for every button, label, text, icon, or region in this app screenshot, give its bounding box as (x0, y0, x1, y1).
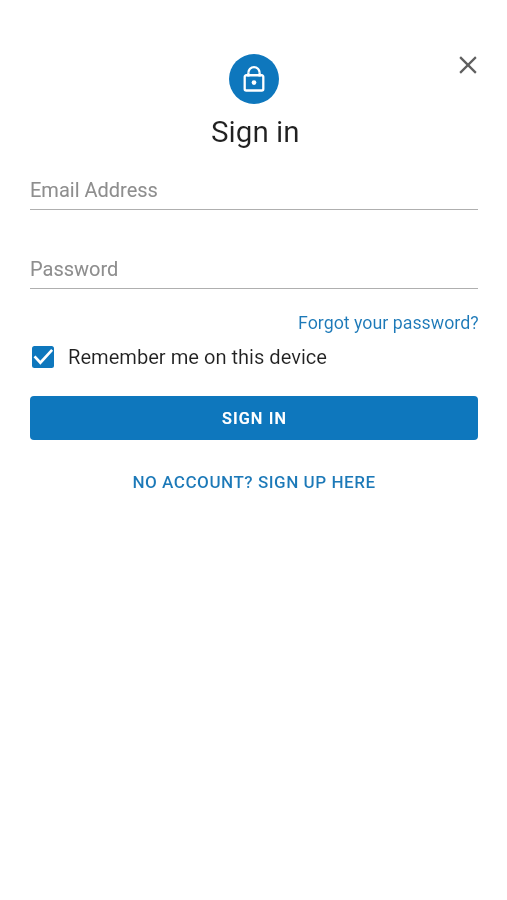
staticText: Forgot your password? (298, 312, 479, 333)
button[interactable]: Close (446, 43, 489, 86)
staticText: Remember me on this device (68, 345, 328, 369)
staticText: Email Address (30, 178, 158, 201)
staticText: NO ACCOUNT? SIGN UP HERE (132, 472, 376, 492)
button[interactable]: Password (30, 257, 478, 289)
button[interactable]: Forgot your password? (298, 312, 479, 333)
staticText: Sign in (211, 115, 300, 150)
button[interactable]: SIGN IN (30, 396, 478, 440)
staticText: Password (30, 257, 119, 280)
button[interactable]: NO ACCOUNT? SIGN UP HERE (132, 472, 376, 492)
button[interactable]: Remember me on this device (32, 345, 328, 369)
staticText: SIGN IN (222, 409, 288, 428)
button[interactable]: Email Address (30, 178, 478, 210)
